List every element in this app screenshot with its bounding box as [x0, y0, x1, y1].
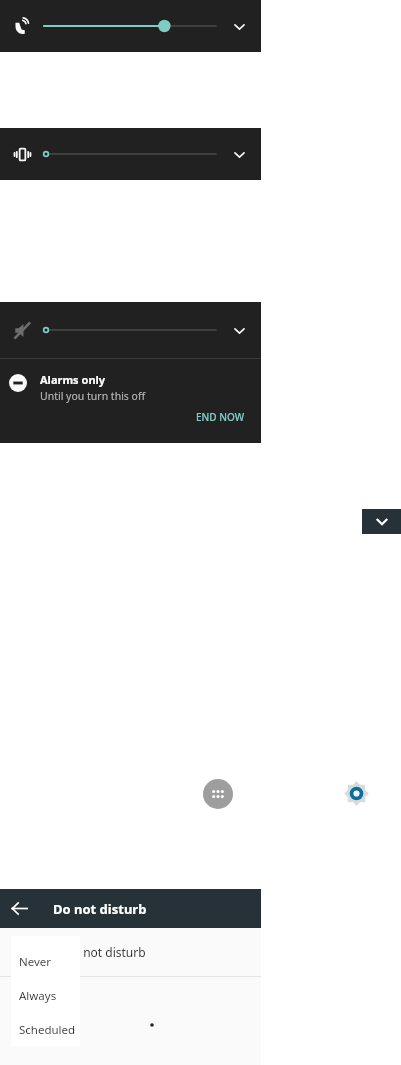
staticText: Until you turn this off: [40, 389, 146, 403]
button[interactable]: Volume slider: [44, 142, 216, 166]
button[interactable]: Always: [11, 979, 80, 1013]
button[interactable]: Alarms only: [0, 359, 261, 403]
button[interactable]: Back: [0, 889, 39, 928]
button[interactable]: Expand: [225, 12, 253, 40]
staticText: Alarms only: [40, 372, 106, 387]
button[interactable]: Expand: [225, 316, 253, 344]
button[interactable]: Volume icon: [8, 316, 36, 344]
button[interactable]: Collapse: [362, 509, 401, 534]
staticText: Always: [19, 988, 57, 1004]
staticText: Scheduled: [19, 1022, 76, 1038]
button[interactable]: END NOW: [180, 403, 261, 431]
staticText: Never: [19, 954, 52, 970]
button[interactable]: Volume icon: [8, 140, 36, 168]
staticText: END NOW: [196, 410, 245, 424]
button[interactable]: All apps: [203, 779, 233, 809]
button[interactable]: Scheduled: [11, 1013, 80, 1046]
staticText: Do not disturb: [53, 900, 147, 918]
button[interactable]: Volume slider: [44, 14, 216, 38]
button[interactable]: Never: [11, 945, 80, 979]
button[interactable]: Expand: [225, 140, 253, 168]
button[interactable]: Volume icon: [8, 12, 36, 40]
button[interactable]: Settings: [341, 778, 372, 809]
button[interactable]: Volume slider: [44, 318, 216, 342]
staticText: Do not disturb: [64, 944, 146, 960]
